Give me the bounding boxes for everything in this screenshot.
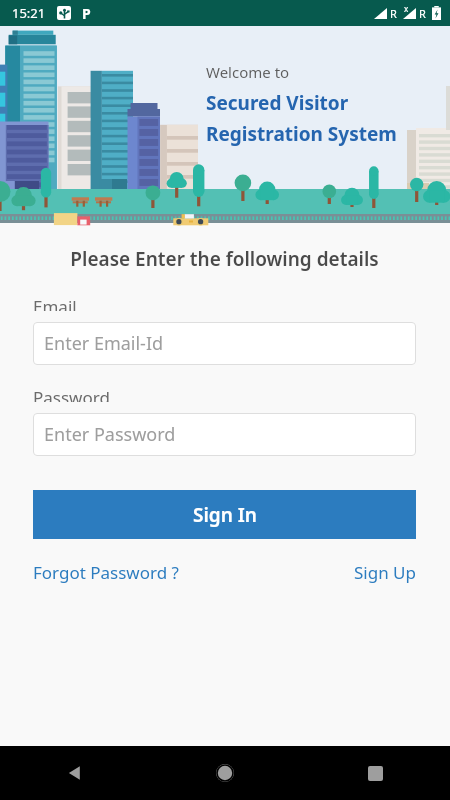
button[interactable]: Forgot Password ? <box>33 561 179 584</box>
staticText: Enter Email-Id <box>44 331 164 356</box>
staticText: Registration System <box>206 121 397 147</box>
staticText: R <box>390 6 397 21</box>
staticText: Password <box>33 386 110 402</box>
staticText: Please Enter the following details <box>70 246 379 272</box>
button[interactable]: Sign In <box>33 490 416 539</box>
button[interactable]: Home <box>150 746 300 800</box>
button[interactable]: Sign Up <box>354 561 416 584</box>
button[interactable]: Enter Password <box>33 413 416 456</box>
button[interactable]: Recent apps <box>300 746 450 800</box>
staticText: Welcome to <box>206 62 290 82</box>
staticText: 15:21 <box>12 4 46 22</box>
staticText: P <box>82 4 91 23</box>
staticText: Enter Password <box>44 422 176 447</box>
staticText: Forgot Password ? <box>33 561 179 584</box>
staticText: x <box>404 3 409 14</box>
staticText: Secured Visitor <box>206 90 349 116</box>
staticText: Sign Up <box>354 561 416 584</box>
button[interactable]: Enter Email-Id <box>33 322 416 365</box>
staticText: Sign In <box>193 502 257 528</box>
button[interactable]: Back <box>0 746 150 800</box>
staticText: Email <box>33 295 77 311</box>
staticText: R <box>419 6 426 21</box>
